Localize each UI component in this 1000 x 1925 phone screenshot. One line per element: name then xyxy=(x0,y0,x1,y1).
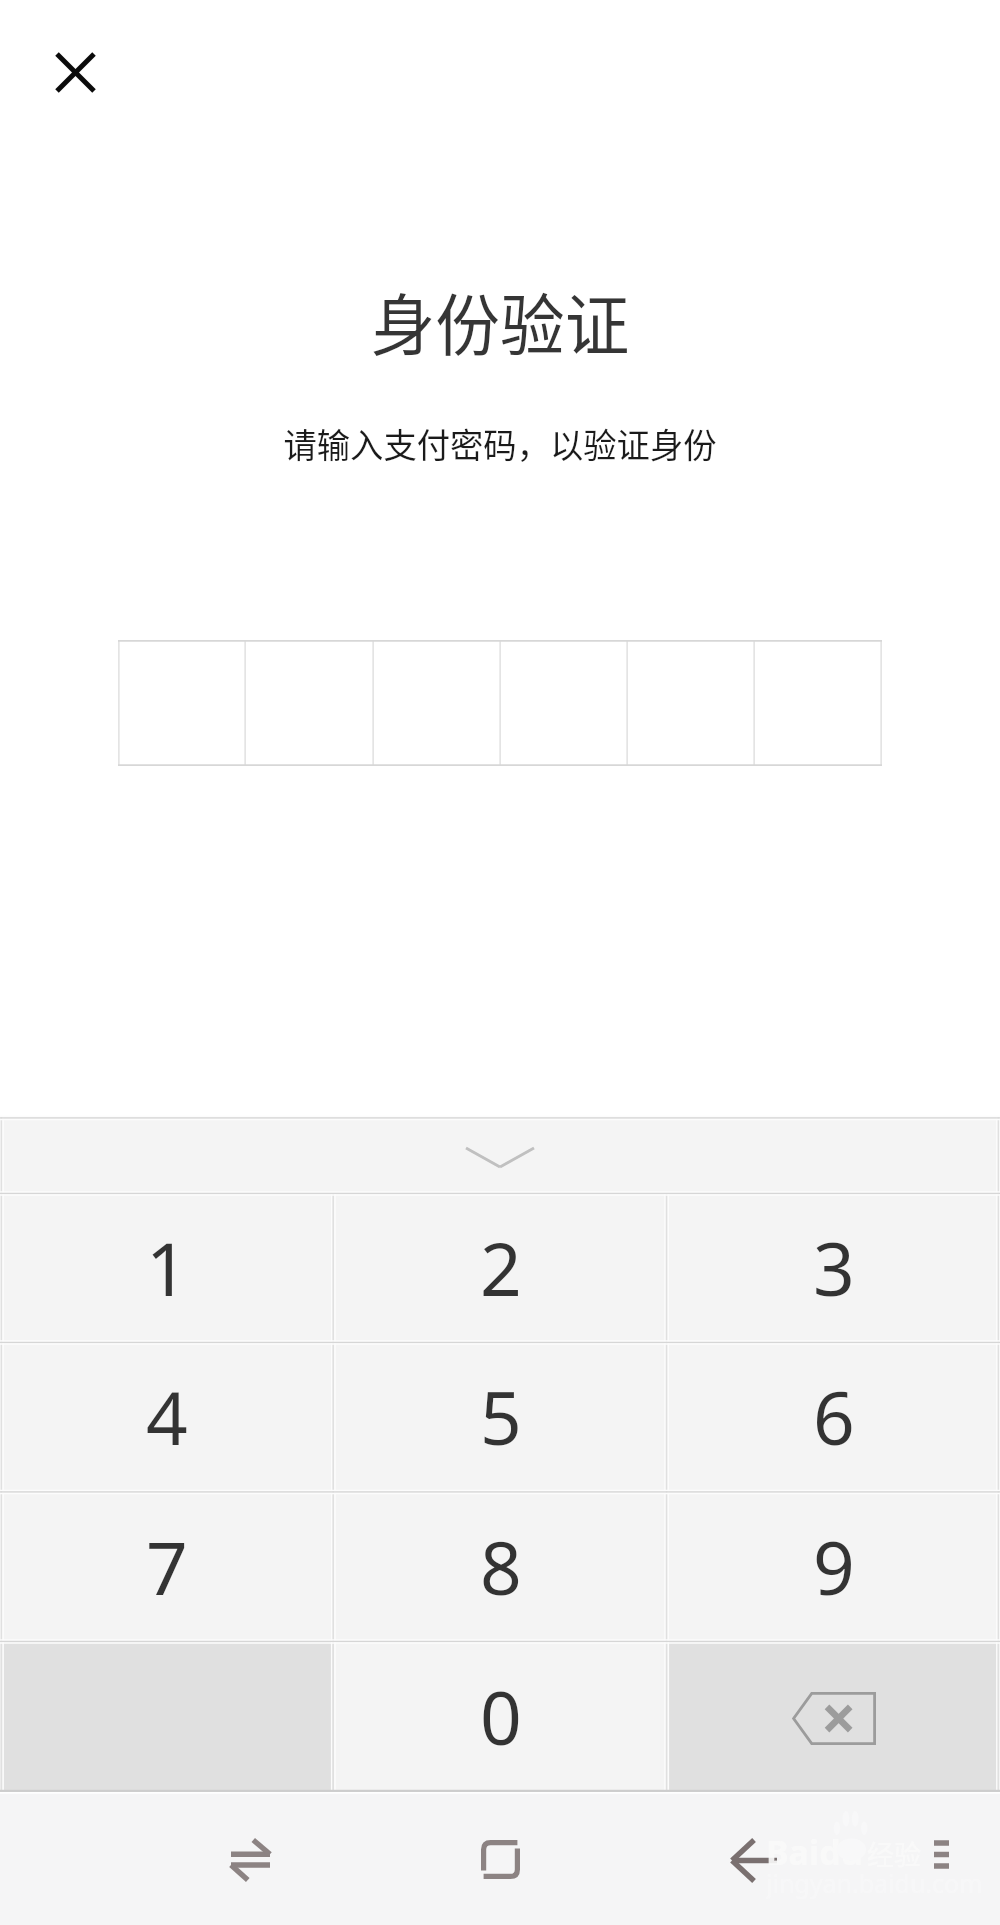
staticText: 7 xyxy=(146,1517,188,1616)
button[interactable]: Hide keyboard xyxy=(0,1117,1000,1193)
button[interactable]: 3 xyxy=(667,1193,1000,1342)
button[interactable]: Backspace xyxy=(667,1641,1000,1791)
staticText: 4 xyxy=(146,1367,188,1466)
staticText: 3 xyxy=(813,1218,855,1317)
button[interactable]: Password digit 4 xyxy=(501,640,628,766)
button[interactable]: Switch input method xyxy=(180,1791,320,1925)
button[interactable]: Password digit 2 xyxy=(246,640,374,766)
button[interactable]: 6 xyxy=(667,1342,1000,1491)
button[interactable]: 5 xyxy=(334,1342,667,1491)
button[interactable]: Close xyxy=(33,30,117,114)
button[interactable]: 1 xyxy=(0,1193,334,1342)
staticText: 8 xyxy=(480,1517,522,1616)
staticText: 6 xyxy=(813,1367,855,1466)
button[interactable]: 2 xyxy=(334,1193,667,1342)
button[interactable]: 9 xyxy=(667,1491,1000,1641)
staticText: 5 xyxy=(480,1367,522,1466)
staticText: 0 xyxy=(480,1667,522,1766)
button[interactable]: Password digit 6 xyxy=(755,640,882,766)
button[interactable]: 8 xyxy=(334,1491,667,1641)
staticText: 身份验证 xyxy=(17,272,982,369)
button[interactable]: Blank xyxy=(0,1641,334,1791)
staticText: 1 xyxy=(146,1218,188,1317)
button[interactable]: Back xyxy=(684,1791,824,1925)
button[interactable]: Password digit 1 xyxy=(118,640,246,766)
button[interactable]: 0 xyxy=(334,1641,667,1791)
staticText: 请输入支付密码，以验证身份 xyxy=(10,419,990,468)
button[interactable]: 4 xyxy=(0,1342,334,1491)
button[interactable]: 7 xyxy=(0,1491,334,1641)
button[interactable]: Password digit 3 xyxy=(374,640,501,766)
staticText: jingyan.baidu.com xyxy=(766,1866,983,1900)
button[interactable]: Password digit 5 xyxy=(628,640,755,766)
button[interactable]: Recent apps xyxy=(430,1791,570,1925)
staticText: 9 xyxy=(813,1517,855,1616)
staticText: 2 xyxy=(480,1218,522,1317)
staticText: Baidu xyxy=(766,1829,863,1875)
